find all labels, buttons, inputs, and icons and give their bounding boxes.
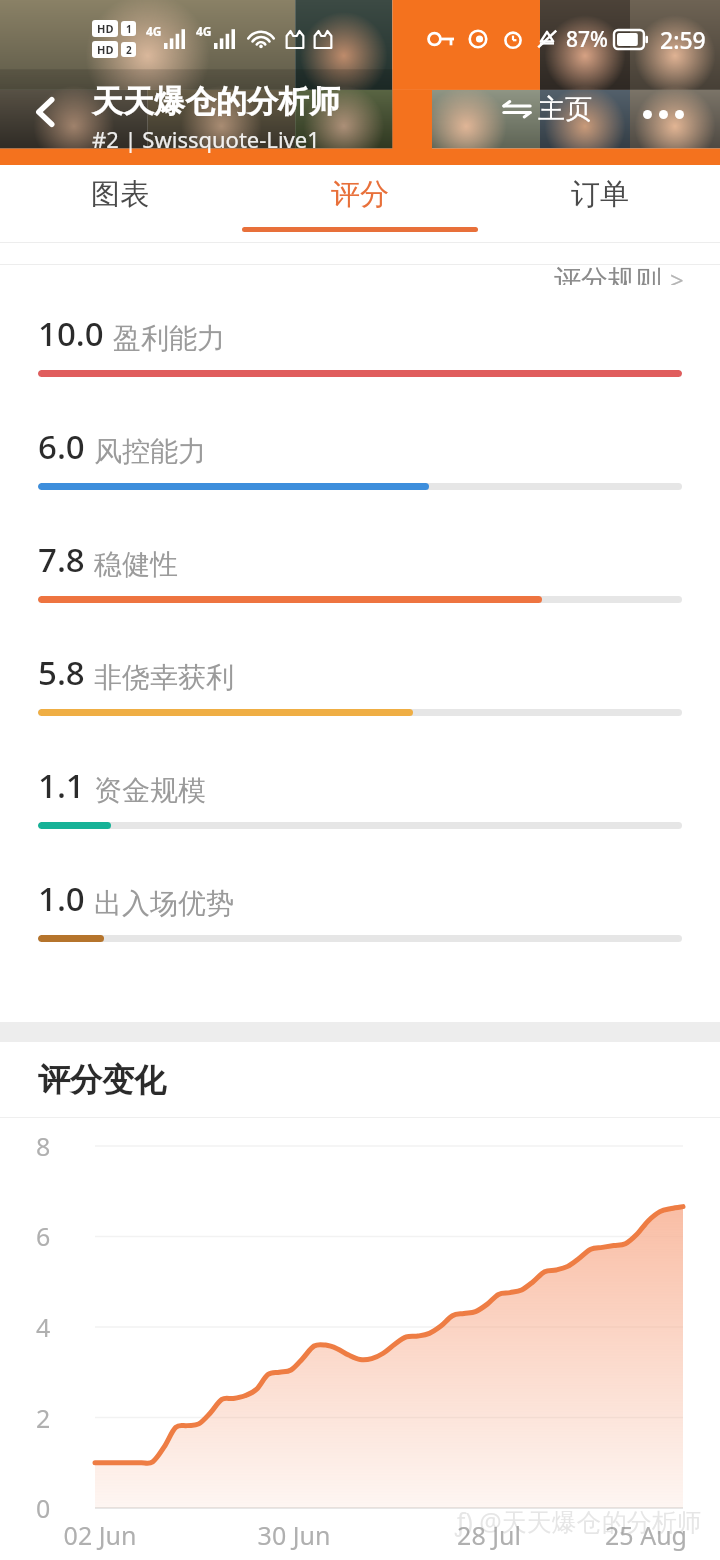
staticText: 02 Jun xyxy=(54,1518,146,1552)
button[interactable]: 5.8 xyxy=(0,650,720,763)
staticText: 2 xyxy=(126,43,132,57)
button[interactable]: Back xyxy=(14,80,78,144)
staticText: ƒ) @天天爆仓的分析师 xyxy=(455,1504,702,1538)
button[interactable]: 评分规则 xyxy=(554,263,684,285)
staticText: 4G xyxy=(196,23,212,39)
staticText: 5.8 xyxy=(38,650,85,695)
staticText: 稳健性 xyxy=(94,547,178,582)
staticText: 图表 xyxy=(91,176,149,213)
staticText: 6 xyxy=(36,1219,51,1253)
staticText: 6.0 xyxy=(38,424,85,469)
staticText: 4G xyxy=(146,23,162,39)
staticText: HD xyxy=(97,21,114,36)
button[interactable]: 图表 xyxy=(0,165,240,243)
staticText: 评分 xyxy=(331,176,389,213)
staticText: 资金规模 xyxy=(94,773,206,808)
button[interactable]: 1.1 xyxy=(0,763,720,876)
button[interactable]: 6.0 xyxy=(0,424,720,537)
button[interactable]: 主页 xyxy=(498,86,596,132)
staticText: 2:59 xyxy=(660,24,706,55)
staticText: 0 xyxy=(36,1491,51,1525)
staticText: 非侥幸获利 xyxy=(94,660,234,695)
staticText: 10.0 xyxy=(38,311,104,356)
staticText: 2 xyxy=(36,1401,51,1435)
staticText: 4 xyxy=(36,1310,51,1344)
staticText: 盈利能力 xyxy=(113,321,225,356)
staticText: 评分变化 xyxy=(38,1060,166,1100)
staticText: 30 Jun xyxy=(248,1518,340,1552)
button[interactable]: 7.8 xyxy=(0,537,720,650)
staticText: 1.0 xyxy=(38,876,85,921)
staticText: 风控能力 xyxy=(94,434,206,469)
staticText: 8 xyxy=(36,1129,51,1163)
button[interactable]: 订单 xyxy=(480,165,720,243)
staticText: HD xyxy=(97,42,114,57)
staticText: 28 Jul xyxy=(443,1518,535,1552)
button[interactable]: 10.0 xyxy=(0,311,720,424)
staticText: 87% xyxy=(566,25,608,54)
staticText: 订单 xyxy=(571,176,629,213)
staticText: #2 | Swissquote-Live1 xyxy=(92,124,320,154)
staticText: 25 Aug xyxy=(600,1518,692,1552)
button[interactable]: 1.0 xyxy=(0,876,720,989)
staticText: 天天爆仓的分析师 xyxy=(92,82,340,121)
staticText: 出入场优势 xyxy=(94,886,234,921)
button[interactable]: 评分 xyxy=(240,165,480,243)
button[interactable]: More options xyxy=(630,84,696,144)
staticText: 1.1 xyxy=(38,763,85,808)
staticText: 7.8 xyxy=(38,537,85,582)
staticText: 主页 xyxy=(538,92,592,126)
staticText: 评分规则 xyxy=(554,263,662,285)
staticText: > xyxy=(670,263,684,285)
staticText: 1 xyxy=(126,22,132,36)
